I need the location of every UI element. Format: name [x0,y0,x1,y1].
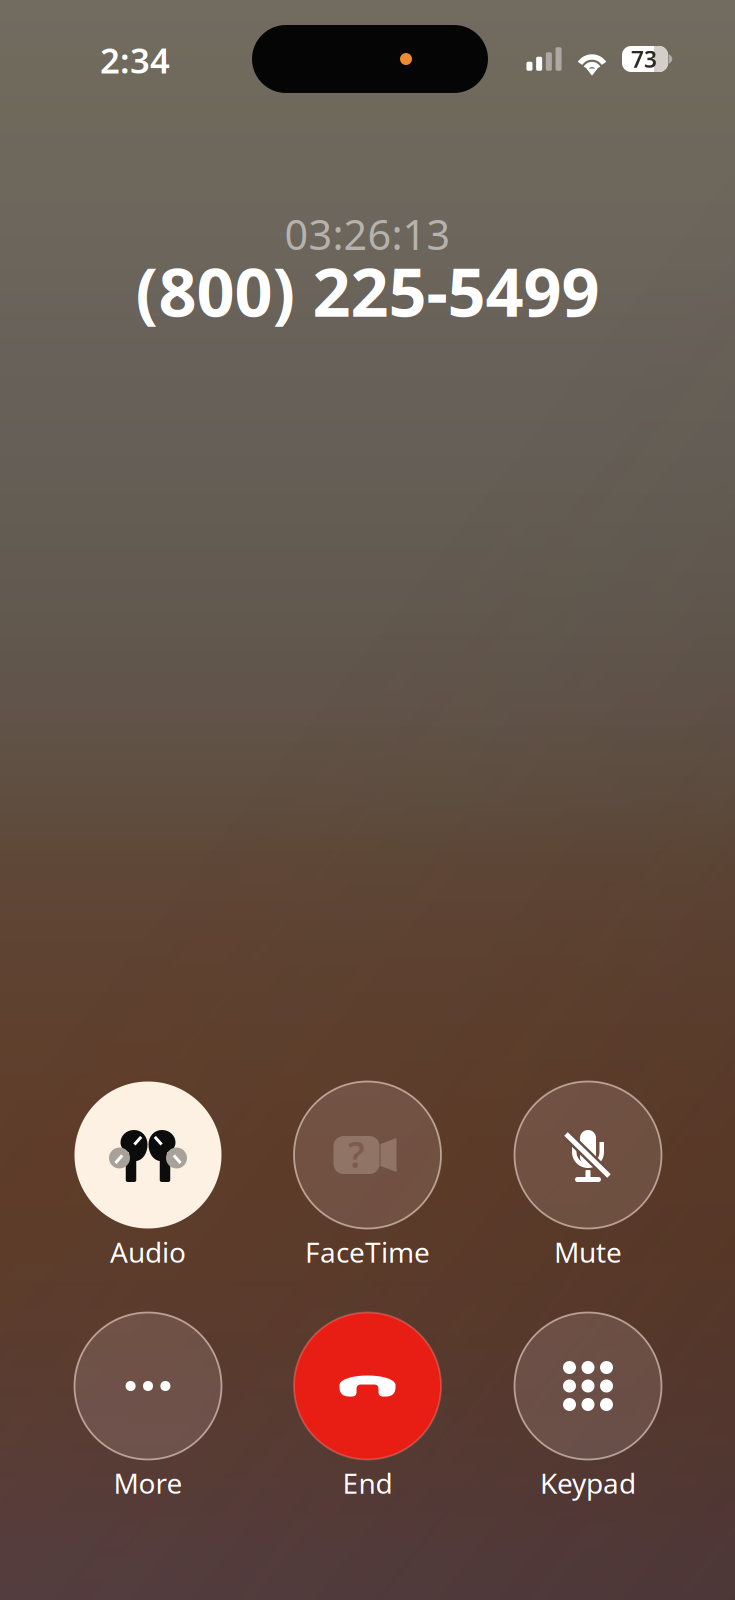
staticText: Audio [110,1233,186,1271]
staticText: 73 [631,44,657,74]
staticText: 03:26:13 [284,207,450,261]
staticText: 2:34 [100,37,170,83]
staticText: Mute [554,1233,622,1271]
button[interactable]: Keypad [478,1271,698,1501]
staticText: End [342,1464,392,1502]
staticText: FaceTime [305,1233,430,1271]
button[interactable]: Mute [478,1040,698,1270]
button[interactable]: Audio [38,1040,258,1270]
staticText: Keypad [540,1464,636,1502]
staticText: ? [348,1130,365,1178]
button[interactable]: More [38,1271,258,1501]
button[interactable]: ? [257,1040,477,1270]
button[interactable]: End [257,1271,477,1501]
staticText: (800) 225-5499 [135,247,599,335]
staticText: More [113,1464,182,1502]
